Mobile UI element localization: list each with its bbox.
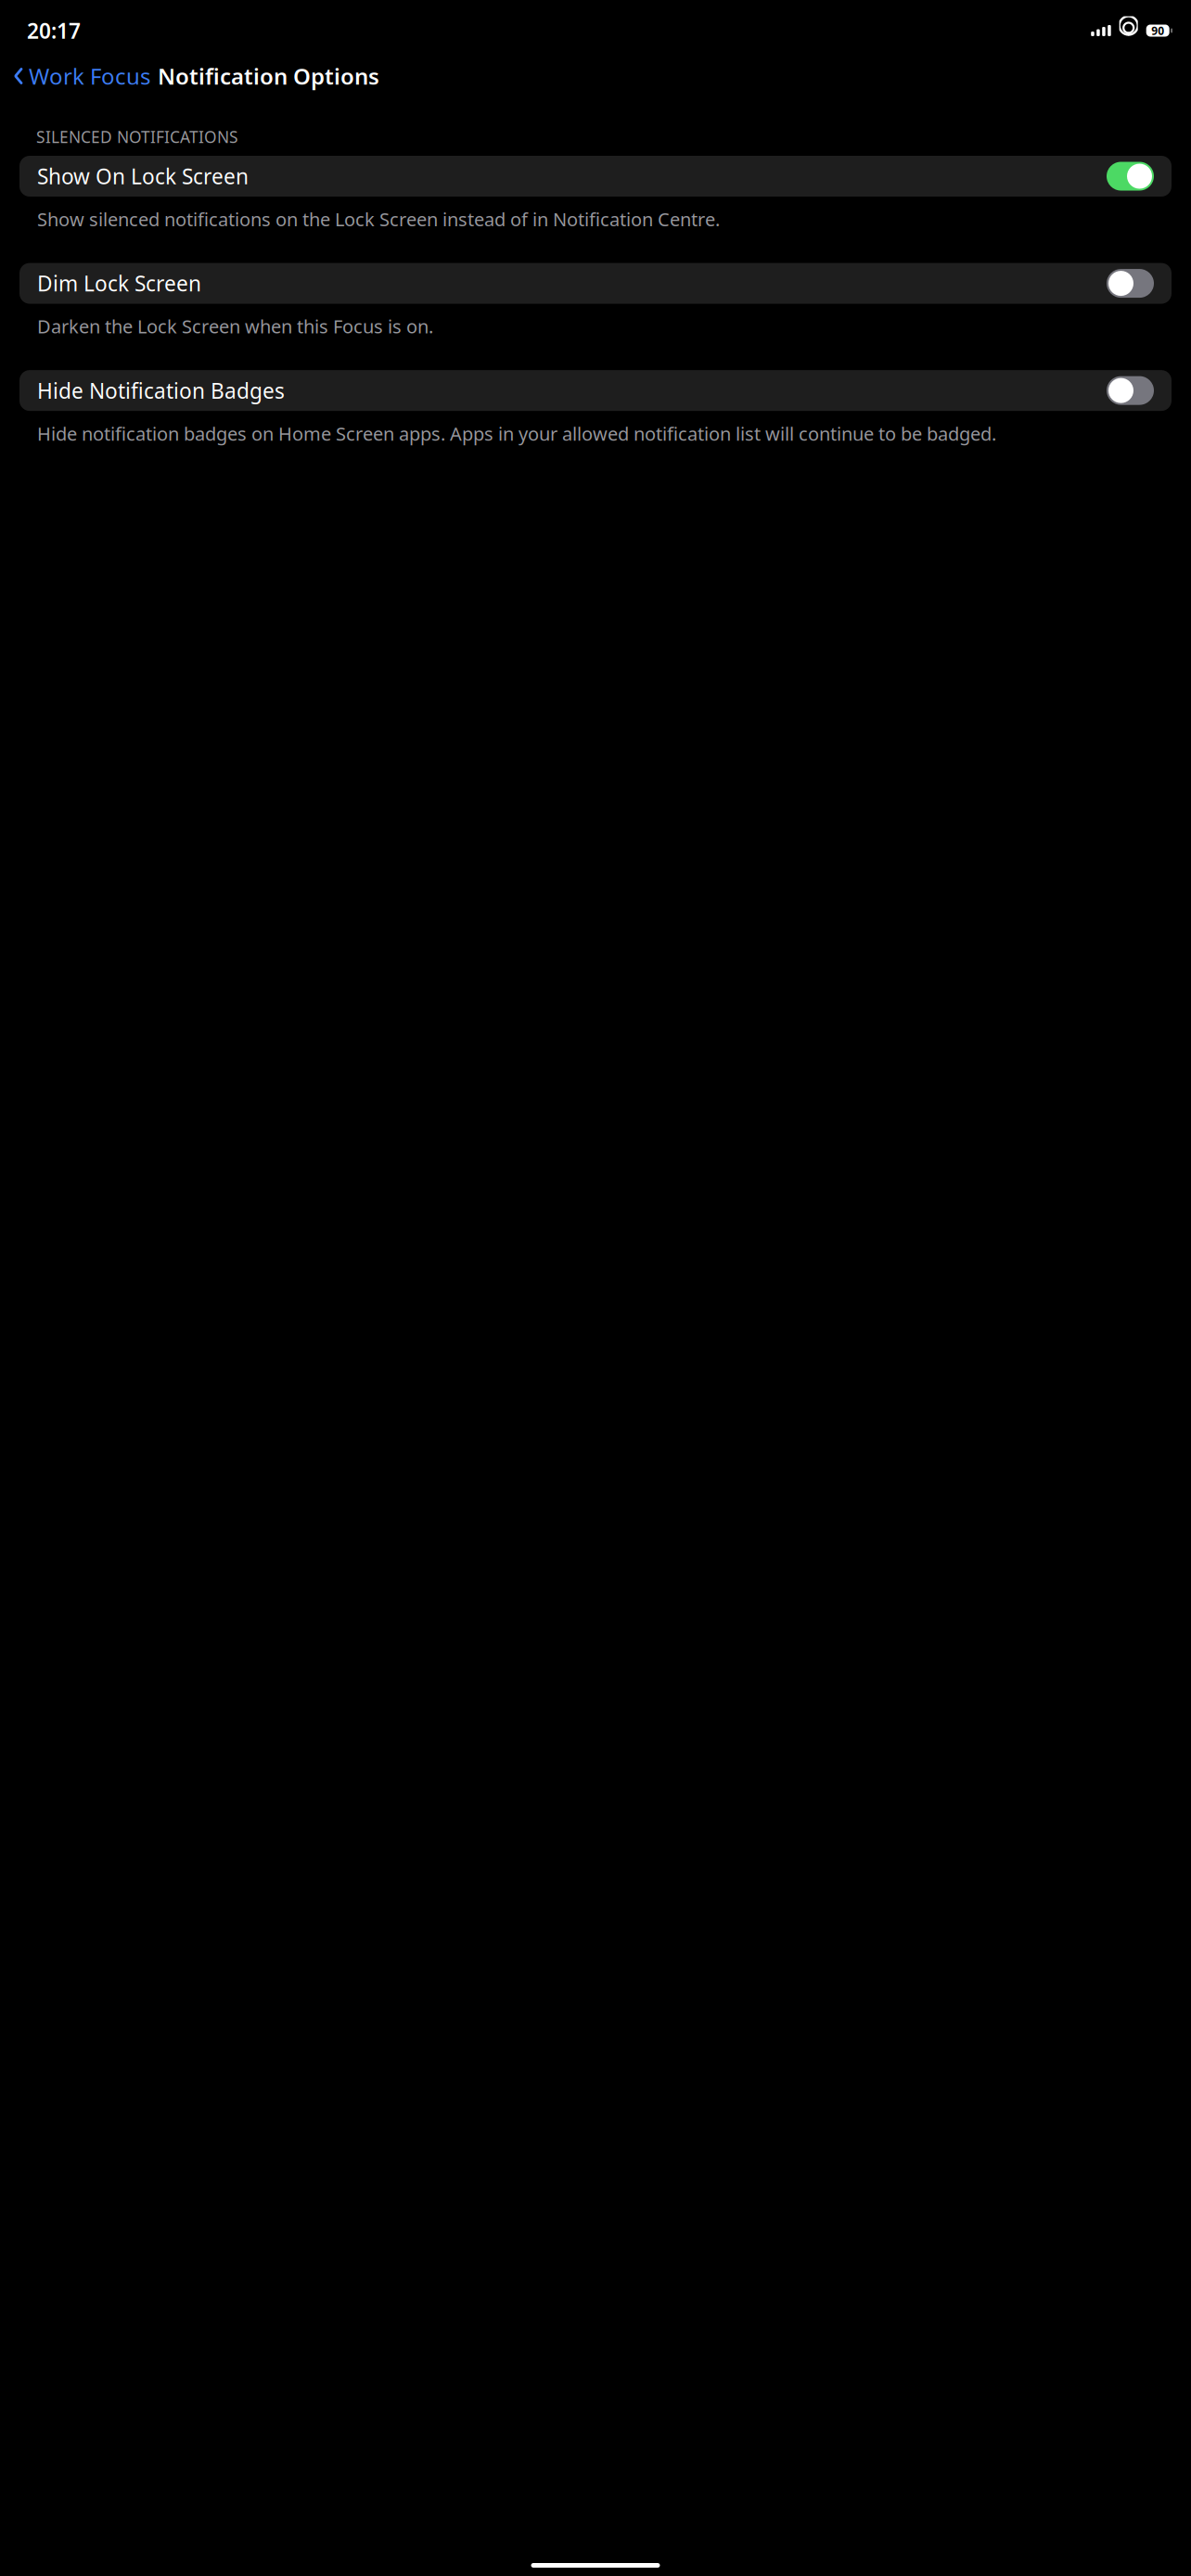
staticText: Show On Lock Screen <box>37 162 249 190</box>
staticText: Hide notification badges on Home Screen … <box>37 421 996 446</box>
button[interactable]: Work Focus <box>4 54 150 98</box>
button[interactable]: Show On Lock Screen <box>19 156 1172 197</box>
staticText: Dim Lock Screen <box>37 269 201 297</box>
staticText: 90 <box>1151 23 1164 38</box>
button[interactable]: Hide Notification Badges <box>19 370 1172 411</box>
staticText: Hide Notification Badges <box>37 377 285 404</box>
staticText: Show silenced notifications on the Lock … <box>37 207 720 231</box>
staticText: Notification Options <box>158 61 379 91</box>
button[interactable]: Dim Lock Screen <box>19 263 1172 304</box>
staticText: SILENCED NOTIFICATIONS <box>36 126 238 147</box>
staticText: Work Focus <box>29 61 150 91</box>
staticText: Darken the Lock Screen when this Focus i… <box>37 314 433 339</box>
staticText: 20:17 <box>27 17 81 45</box>
